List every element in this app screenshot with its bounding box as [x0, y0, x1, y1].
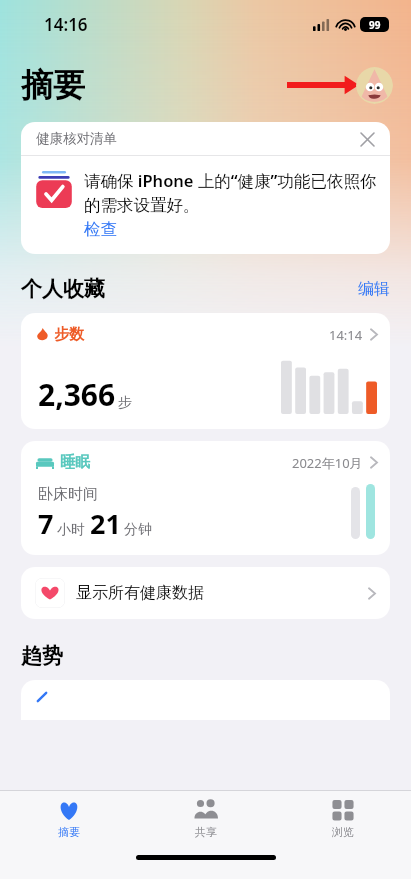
staticText: 浏览 — [332, 825, 354, 839]
staticText: 步 — [118, 394, 132, 412]
staticText: 14:14 — [329, 326, 363, 344]
staticText: 趋势 — [21, 643, 63, 669]
staticText: 个人收藏 — [21, 276, 105, 302]
staticText: 编辑 — [358, 279, 390, 299]
staticText: 显示所有健康数据 — [76, 583, 204, 603]
staticText: 共享 — [195, 825, 217, 839]
button[interactable]: 摘要 — [0, 791, 137, 851]
button[interactable]: 浏览 — [274, 791, 411, 851]
button[interactable]: 编辑 — [358, 279, 390, 299]
staticText: 健康核对清单 — [36, 130, 117, 147]
staticText: 检查 — [84, 219, 117, 240]
staticText: 分钟 — [124, 521, 152, 539]
staticText: 摘要 — [58, 825, 80, 839]
staticText: 99 — [369, 18, 381, 32]
button[interactable]: Profile — [356, 67, 393, 104]
button[interactable]: 显示所有健康数据 — [21, 567, 390, 619]
button[interactable]: 共享 — [137, 791, 274, 851]
staticText: 小时 — [57, 521, 85, 539]
button[interactable] — [21, 680, 390, 720]
staticText: 摘要 — [21, 65, 85, 105]
staticText: 请确保 iPhone 上的“健康”功能已依照你的需求设置好。 — [84, 169, 377, 216]
staticText: 步数 — [54, 325, 84, 344]
staticText: 7 — [38, 505, 54, 542]
staticText: 2,366 — [38, 374, 116, 415]
staticText: 睡眠 — [60, 453, 90, 472]
staticText: 14:16 — [44, 13, 88, 36]
staticText: 21 — [90, 505, 121, 542]
button[interactable]: 检查 — [84, 219, 117, 240]
button[interactable]: Close — [354, 126, 380, 152]
staticText: 卧床时间 — [38, 485, 98, 504]
button[interactable]: 步数 — [21, 313, 390, 429]
button[interactable]: 睡眠 — [21, 441, 390, 555]
staticText: 2022年10月 — [292, 454, 363, 472]
